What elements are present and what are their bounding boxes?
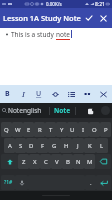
staticText: G <box>52 142 57 150</box>
staticText: Notenglish <box>8 106 42 115</box>
staticText: J <box>77 142 79 150</box>
button[interactable]: B <box>62 154 73 169</box>
staticText: . <box>90 179 92 187</box>
button[interactable]: M <box>84 154 95 169</box>
button[interactable]: Bullet list <box>64 87 78 101</box>
button[interactable]: Note <box>50 104 75 117</box>
button[interactable]: E <box>23 122 34 137</box>
button[interactable]: Clear formatting <box>96 87 110 101</box>
staticText: B <box>5 89 10 99</box>
staticText: D <box>29 142 34 150</box>
staticText: L <box>100 142 104 150</box>
button[interactable]: Clipboard <box>86 106 96 116</box>
button[interactable]: T <box>45 122 56 137</box>
staticText: Lesson 1A Study Note <box>3 13 81 23</box>
staticText: Y <box>60 126 64 134</box>
button[interactable]: Q <box>1 122 12 137</box>
button[interactable]: Enter <box>96 175 111 190</box>
button[interactable]: F <box>37 138 48 153</box>
staticText: O <box>92 126 97 134</box>
button[interactable]: Search <box>1 107 8 114</box>
staticText: I <box>82 126 85 134</box>
button[interactable]: K <box>84 138 96 153</box>
button[interactable]: U <box>67 122 78 137</box>
staticText: Note <box>54 106 71 115</box>
button[interactable]: Notenglish <box>8 106 42 115</box>
button[interactable]: D <box>26 138 37 153</box>
button[interactable]: Save note <box>82 11 96 25</box>
button[interactable]: Backspace <box>95 154 111 169</box>
staticText: U <box>70 126 75 134</box>
button[interactable]: Underline <box>32 87 46 101</box>
staticText: note <box>56 30 70 39</box>
button[interactable]: C <box>40 154 51 169</box>
button[interactable]: Symbols <box>1 175 15 190</box>
button[interactable]: Shift <box>1 154 18 169</box>
staticText: 8:21 <box>95 1 105 8</box>
button[interactable]: G <box>48 138 60 153</box>
staticText: ?1# <box>4 179 13 186</box>
staticText: W <box>15 126 21 134</box>
staticText: N <box>76 158 81 166</box>
staticText: This is a study <box>11 30 56 39</box>
staticText: X <box>33 158 37 166</box>
staticText: Q <box>4 126 9 134</box>
button[interactable]: Period <box>85 175 96 190</box>
button[interactable]: N <box>73 154 84 169</box>
staticText: H <box>64 142 69 150</box>
button[interactable]: Voice input <box>15 175 28 190</box>
staticText: U <box>36 89 42 99</box>
button[interactable]: Discard <box>96 11 110 25</box>
staticText: A <box>8 142 12 150</box>
button[interactable]: A <box>4 138 15 153</box>
staticText: B <box>66 158 70 166</box>
button[interactable]: L <box>96 138 108 153</box>
button[interactable]: Z <box>18 154 29 169</box>
staticText: I <box>22 89 25 99</box>
button[interactable]: Italic <box>16 87 30 101</box>
button[interactable]: J <box>72 138 84 153</box>
staticText: F <box>41 142 45 150</box>
button[interactable]: P <box>100 122 111 137</box>
staticText: 0.00K/s <box>46 1 62 7</box>
button[interactable]: H <box>60 138 72 153</box>
staticText: T <box>49 126 53 134</box>
button[interactable]: V <box>51 154 62 169</box>
staticText: K <box>88 142 92 150</box>
staticText: C <box>44 158 48 166</box>
button[interactable]: I <box>78 122 89 137</box>
staticText: E <box>27 126 31 134</box>
button[interactable]: Quote <box>80 87 94 101</box>
staticText: R <box>38 126 42 134</box>
button[interactable]: X <box>29 154 40 169</box>
staticText: M <box>87 158 93 166</box>
button[interactable]: Insert link <box>48 87 62 101</box>
staticText: S <box>19 142 23 150</box>
button[interactable]: Keyboard settings <box>100 105 111 116</box>
staticText: V <box>55 158 59 166</box>
button[interactable]: R <box>34 122 45 137</box>
button[interactable]: W <box>12 122 23 137</box>
button[interactable]: Bold <box>0 87 14 101</box>
button[interactable]: O <box>89 122 100 137</box>
staticText: Z <box>22 158 26 166</box>
staticText: P <box>104 126 108 134</box>
button[interactable]: S <box>15 138 26 153</box>
button[interactable]: Y <box>56 122 67 137</box>
